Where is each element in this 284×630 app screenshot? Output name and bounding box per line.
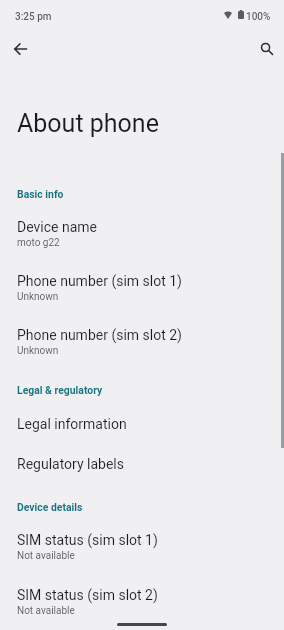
staticText: Not available xyxy=(17,605,75,617)
button[interactable]: SIM status (sim slot 2) xyxy=(0,575,284,619)
button[interactable]: Legal information xyxy=(0,404,284,438)
staticText: About phone xyxy=(17,109,159,138)
button[interactable]: Device name xyxy=(0,207,284,251)
staticText: Not available xyxy=(17,550,75,562)
staticText: Legal information xyxy=(17,416,127,432)
button[interactable]: SIM status (sim slot 1) xyxy=(0,520,284,564)
button[interactable]: Phone number (sim slot 2) xyxy=(0,315,284,359)
button[interactable]: Basic info xyxy=(0,181,284,201)
staticText: Device details xyxy=(17,501,83,513)
button[interactable]: Phone number (sim slot 1) xyxy=(0,261,284,305)
button[interactable]: Legal & regulatory xyxy=(0,377,284,397)
staticText: SIM status (sim slot 1) xyxy=(17,532,158,548)
staticText: 100% xyxy=(246,11,271,23)
staticText: Phone number (sim slot 2) xyxy=(17,327,182,343)
staticText: SIM status (sim slot 2) xyxy=(17,587,158,603)
staticText: Unknown xyxy=(17,345,59,357)
staticText: Legal & regulatory xyxy=(17,384,103,396)
button[interactable]: Search xyxy=(248,29,284,69)
staticText: Device name xyxy=(17,219,97,235)
staticText: Regulatory labels xyxy=(17,456,124,472)
staticText: 3:25 pm xyxy=(15,11,52,23)
staticText: moto g22 xyxy=(17,237,60,249)
button[interactable]: Device details xyxy=(0,494,284,514)
button[interactable]: Regulatory labels xyxy=(0,444,284,478)
staticText: Phone number (sim slot 1) xyxy=(17,273,182,289)
staticText: Basic info xyxy=(17,188,64,200)
staticText: Unknown xyxy=(17,291,59,303)
button[interactable]: Back xyxy=(4,29,37,69)
